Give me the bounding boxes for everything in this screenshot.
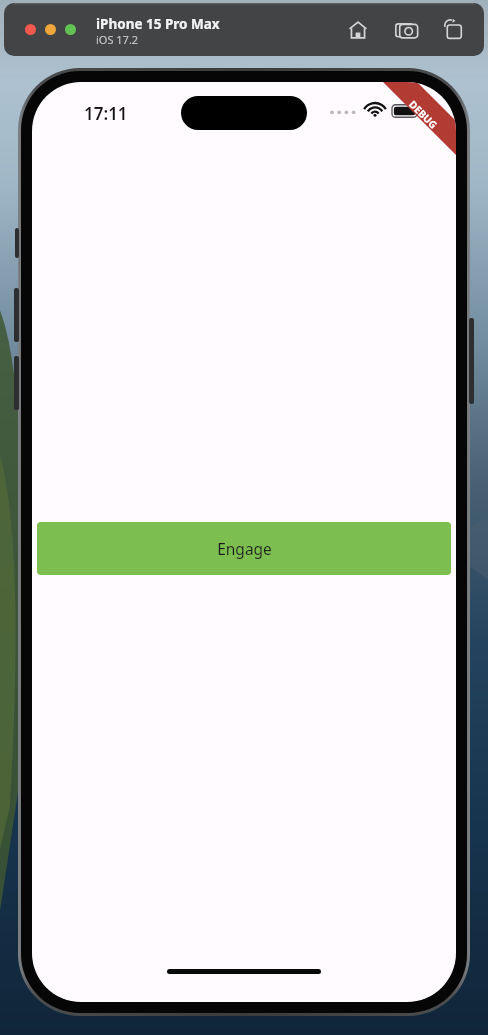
staticText: DEBUG (406, 97, 441, 132)
button[interactable]: Volume down (14, 356, 19, 410)
button[interactable]: Silent switch (15, 228, 19, 258)
button[interactable]: Engage (37, 522, 451, 575)
staticText: iOS 17.2 (96, 32, 139, 47)
button[interactable]: Screenshot (393, 16, 421, 44)
staticText: iPhone 15 Pro Max (96, 15, 220, 33)
button[interactable]: Rotate (440, 16, 468, 44)
button[interactable]: Close (25, 24, 36, 35)
staticText: 17:11 (84, 102, 128, 125)
button[interactable]: Minimize (45, 24, 56, 35)
button[interactable]: Zoom (65, 24, 76, 35)
button[interactable]: Volume up (14, 288, 19, 342)
button[interactable]: Side button (469, 318, 474, 404)
button[interactable]: Home (344, 16, 372, 44)
staticText: Engage (217, 538, 272, 559)
